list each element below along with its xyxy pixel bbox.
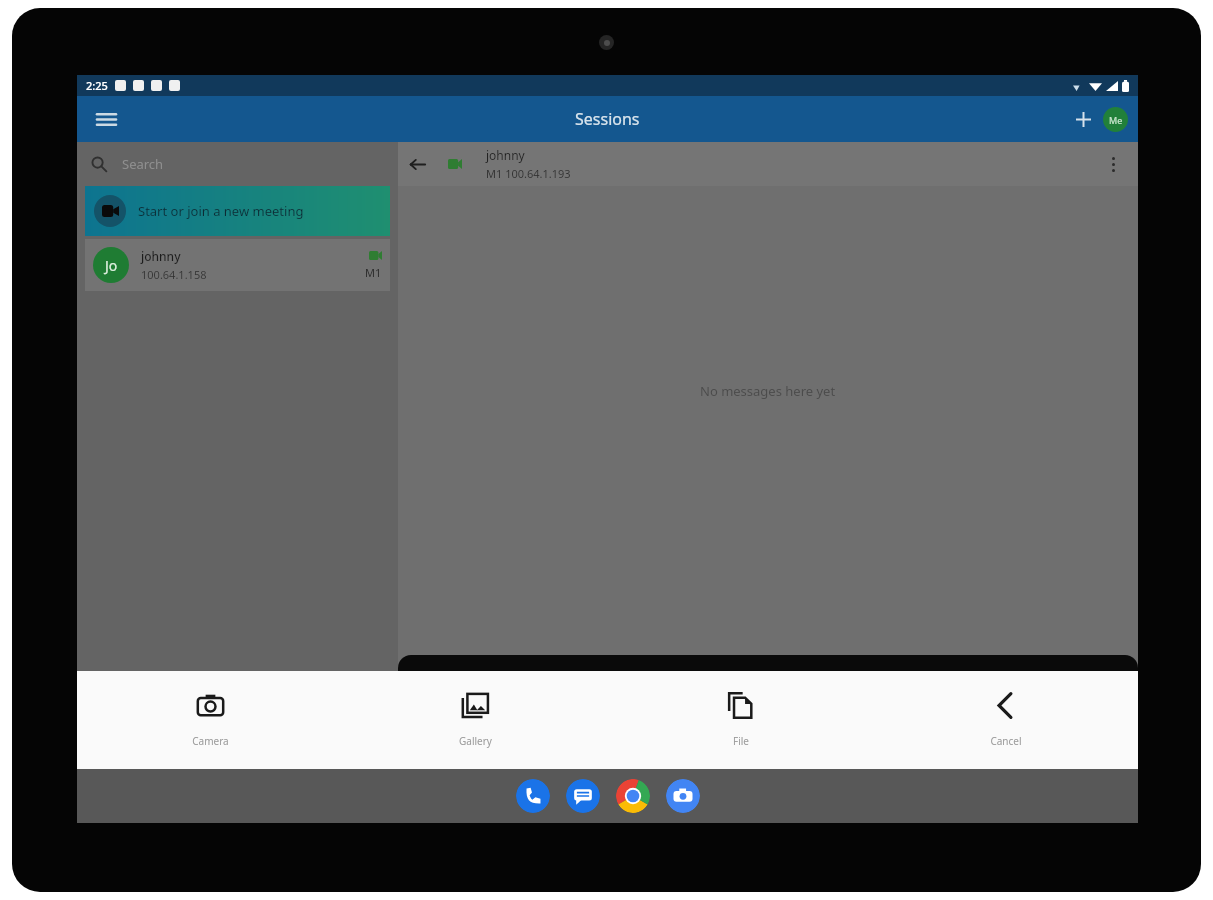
button[interactable]: New session [1065, 101, 1101, 137]
button[interactable]: My profile [1103, 107, 1128, 132]
staticText: 2:25 [86, 78, 108, 93]
button[interactable]: Jo [85, 239, 390, 291]
button[interactable]: Gallery [343, 671, 608, 769]
staticText: Sessions [575, 108, 640, 130]
staticText: johnny [486, 147, 525, 163]
button[interactable]: Camera [77, 671, 343, 769]
staticText: M1 [365, 265, 382, 280]
staticText: Search [122, 155, 164, 173]
staticText: Camera [192, 734, 229, 748]
button[interactable]: Start or join a new meeting [85, 186, 390, 236]
staticText: 100.64.1.158 [141, 267, 207, 282]
button[interactable]: Messages [566, 779, 600, 813]
staticText: No messages here yet [700, 382, 836, 400]
staticText: Jo [105, 256, 118, 275]
button[interactable]: File [608, 671, 873, 769]
staticText: Cancel [990, 734, 1022, 748]
button[interactable]: Phone [516, 779, 550, 813]
button[interactable]: Back [398, 145, 436, 183]
button[interactable]: Cancel [873, 671, 1138, 769]
staticText: johnny [141, 248, 181, 264]
staticText: Start or join a new meeting [138, 202, 304, 220]
staticText: Me [1109, 114, 1123, 126]
button[interactable]: More options [1094, 145, 1132, 183]
button[interactable]: Chrome [616, 779, 650, 813]
button[interactable]: Camera [666, 779, 700, 813]
button[interactable]: Search [77, 142, 398, 186]
staticText: Gallery [459, 734, 492, 748]
staticText: M1 100.64.1.193 [486, 166, 571, 181]
staticText: File [733, 734, 749, 748]
button[interactable]: Open navigation drawer [87, 100, 125, 138]
